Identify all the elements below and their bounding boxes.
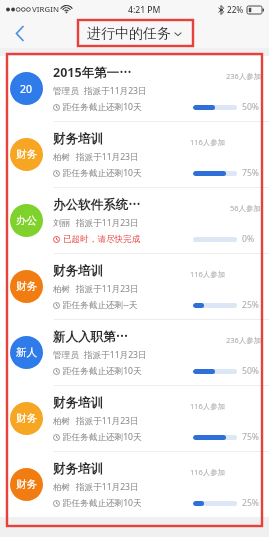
staticText: 新人入职第一课: [53, 329, 139, 345]
staticText: 116人参加: [190, 269, 226, 279]
staticText: 116人参加: [190, 467, 226, 477]
staticText: 236人参加: [226, 71, 262, 81]
staticText: 距任务截止还剩10天: [63, 167, 142, 179]
staticText: 0%: [242, 233, 255, 245]
staticText: 4:21 PM: [128, 4, 161, 16]
staticText: 办公软件系统学习: [53, 197, 141, 213]
staticText: 刘丽: [53, 218, 71, 229]
staticText: 距任务截止还剩10天: [63, 101, 142, 113]
staticText: 2015年第一季度学习计划: [53, 64, 139, 81]
button[interactable]: 办公: [0, 188, 269, 253]
staticText: 新人: [16, 346, 37, 359]
staticText: 50%: [242, 101, 259, 113]
staticText: 财务: [16, 280, 37, 293]
staticText: 指派于11月23日: [76, 217, 139, 229]
staticText: 25%: [242, 497, 259, 509]
button[interactable]: 新人: [0, 320, 269, 385]
staticText: 116人参加: [190, 401, 226, 411]
button[interactable]: 财务: [0, 386, 269, 451]
staticText: VIRGIN: [32, 4, 59, 15]
staticText: 56人参加: [230, 203, 262, 213]
staticText: 柏树: [53, 482, 71, 493]
button[interactable]: 财务: [0, 122, 269, 187]
button[interactable]: 财务: [0, 452, 269, 517]
staticText: 柏树: [53, 152, 71, 163]
staticText: 75%: [242, 167, 259, 179]
button[interactable]: 财务: [0, 254, 269, 319]
staticText: 财务培训: [53, 395, 103, 411]
staticText: 指派于11月23日: [76, 415, 139, 427]
staticText: 柏树: [53, 416, 71, 427]
staticText: 指派于11月23日: [76, 151, 139, 163]
staticText: 指派于11月23日: [84, 85, 147, 97]
staticText: 20: [20, 82, 33, 96]
staticText: 指派于11月23日: [76, 283, 139, 295]
staticText: 236人参加: [226, 335, 262, 345]
staticText: 50%: [242, 365, 259, 377]
staticText: 22%: [227, 4, 244, 15]
staticText: 财务培训: [53, 263, 103, 279]
staticText: 财务培训: [53, 461, 103, 477]
staticText: 柏树: [53, 284, 71, 295]
staticText: 办公: [16, 214, 37, 227]
staticText: 距任务截止还剩10天: [63, 365, 142, 377]
staticText: 距任务截止还剩10天: [63, 497, 142, 509]
staticText: 已超时，请尽快完成: [63, 234, 141, 245]
staticText: 财务: [16, 412, 37, 425]
staticText: 管理员: [53, 350, 79, 361]
button[interactable]: 20: [0, 56, 269, 121]
button[interactable]: 进行中的任务: [87, 25, 182, 43]
staticText: 距任务截止还剩--天: [63, 299, 138, 311]
staticText: 管理员: [53, 86, 79, 97]
staticText: 进行中的任务: [87, 25, 171, 43]
staticText: 116人参加: [190, 137, 226, 147]
staticText: 指派于11月23日: [76, 481, 139, 493]
button[interactable]: Back: [5, 19, 35, 48]
staticText: 财务: [16, 478, 37, 491]
staticText: 指派于11月23日: [84, 349, 147, 361]
staticText: 财务培训: [53, 131, 103, 147]
staticText: 财务: [16, 148, 37, 161]
staticText: 75%: [242, 431, 259, 443]
staticText: 25%: [242, 299, 259, 311]
staticText: 距任务截止还剩10天: [63, 431, 142, 443]
